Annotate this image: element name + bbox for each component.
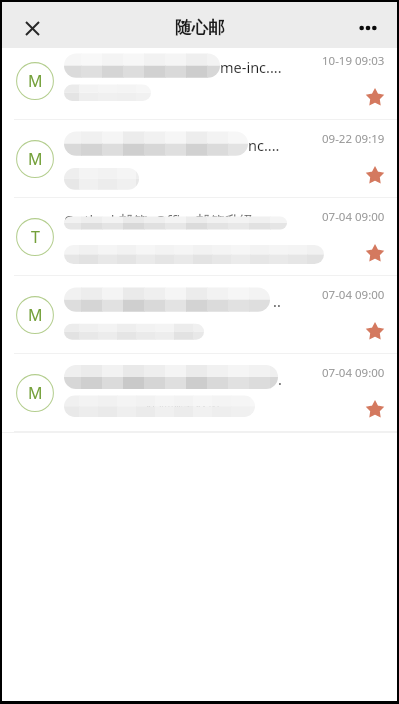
button[interactable]: M <box>2 42 397 120</box>
staticText: T <box>31 226 40 248</box>
staticText: . <box>278 369 282 389</box>
staticText: .. <box>273 291 281 311</box>
button[interactable]: More options <box>345 6 390 50</box>
staticText: 07-04 09:00 <box>322 365 385 381</box>
staticText: M <box>28 70 43 92</box>
staticText: M <box>28 304 43 326</box>
button[interactable]: M <box>2 120 397 198</box>
staticText: Outlook邮箱: Office邮箱升级 <box>64 210 254 230</box>
staticText: 10-19 09:03 <box>322 53 385 69</box>
staticText: 07-04 09:00 <box>322 209 385 225</box>
button[interactable]: Close <box>12 6 52 50</box>
button[interactable]: M <box>2 276 397 354</box>
button[interactable]: T <box>2 198 397 276</box>
staticText: 09-22 09:19 <box>322 131 385 147</box>
button[interactable]: M <box>2 354 397 432</box>
staticText: M <box>28 148 43 170</box>
staticText: 近期流量数据 <box>145 396 220 412</box>
staticText: 07-04 09:00 <box>322 287 385 303</box>
staticText: nc.... <box>248 135 280 155</box>
staticText: M <box>28 382 43 404</box>
staticText: me-inc.... <box>220 57 282 77</box>
staticText: 随心邮 <box>175 17 225 38</box>
